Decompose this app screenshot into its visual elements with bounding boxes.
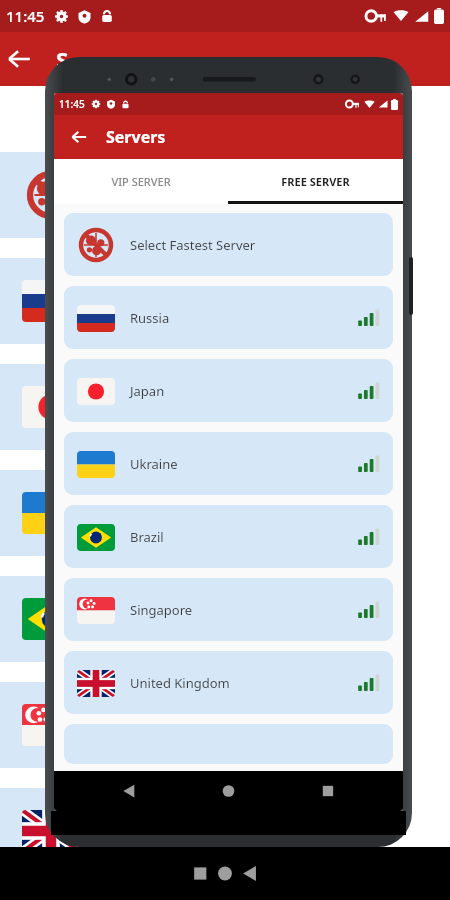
staticText: Singapore xyxy=(130,601,193,619)
button[interactable]: United Kingdom xyxy=(64,651,393,714)
staticText: VIP SERVER xyxy=(111,174,171,189)
button[interactable]: Ukraine xyxy=(64,432,393,495)
button[interactable]: FREE SERVER xyxy=(228,159,403,204)
staticText: United Kingdom xyxy=(130,674,230,692)
staticText: Brazil xyxy=(130,528,164,546)
button[interactable]: Japan xyxy=(64,359,393,422)
button[interactable]: Back xyxy=(62,120,96,154)
staticText: S xyxy=(56,44,69,74)
button[interactable]: Select Fastest Server xyxy=(64,213,393,276)
staticText: 11:45 xyxy=(59,97,85,111)
button[interactable]: Singapore xyxy=(64,578,393,641)
button[interactable]: Russia xyxy=(64,286,393,349)
staticText: 11:45 xyxy=(6,6,45,26)
staticText: Servers xyxy=(106,126,166,148)
staticText: Ukraine xyxy=(130,455,178,473)
button[interactable]: VIP SERVER xyxy=(54,159,228,204)
staticText: Japan xyxy=(130,382,165,400)
staticText: Russia xyxy=(130,309,170,327)
staticText: FREE SERVER xyxy=(281,174,350,189)
staticText: Select Fastest Server xyxy=(130,236,256,254)
button[interactable]: Brazil xyxy=(64,505,393,568)
